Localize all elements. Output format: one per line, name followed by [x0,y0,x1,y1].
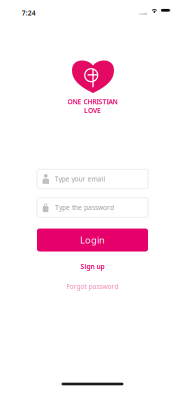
staticText: Login [80,234,105,246]
staticText: 7:24 [22,9,36,17]
button[interactable]: Sign up [72,258,112,275]
button[interactable]: Type your email [37,169,148,189]
button[interactable]: Login [37,228,148,251]
staticText: Type your email [55,174,106,183]
button[interactable]: Forgot password [58,278,126,295]
staticText: ONE CHRISTIAN [67,97,117,106]
staticText: Forgot password [66,282,118,291]
staticText: LOVE [84,106,101,115]
button[interactable]: Type the password [37,198,148,217]
staticText: Sign up [80,262,104,271]
staticText: Type the password [55,203,114,212]
